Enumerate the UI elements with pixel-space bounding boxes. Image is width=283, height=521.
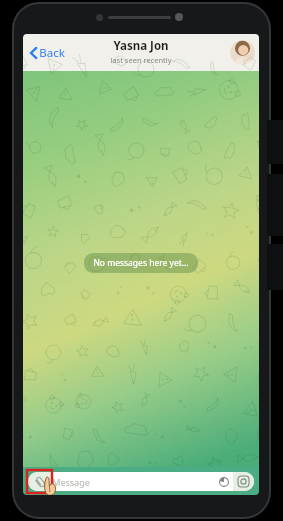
button[interactable]: Attach file (28, 472, 52, 491)
staticText: last seen recently (110, 55, 172, 65)
button[interactable]: Back (27, 40, 68, 66)
button[interactable]: No messages here yet... (84, 253, 198, 273)
staticText: Back (39, 45, 65, 61)
button[interactable]: Profile photo (230, 40, 255, 65)
button[interactable]: Schedule message (214, 472, 233, 491)
staticText: No messages here yet... (93, 257, 189, 269)
staticText: Message (52, 476, 90, 488)
button[interactable]: Camera (233, 472, 254, 491)
staticText: Yasna Jon (113, 38, 169, 54)
